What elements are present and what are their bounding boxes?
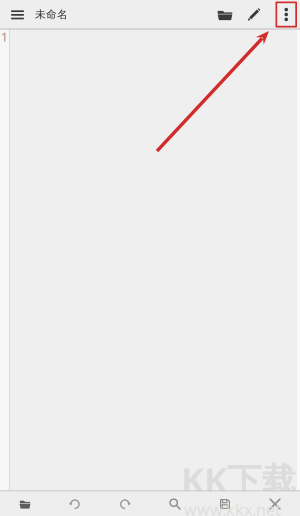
button[interactable]: Close: [250, 491, 300, 516]
button[interactable]: Menu: [7, 0, 28, 28]
button[interactable]: More options: [275, 1, 297, 27]
button[interactable]: Open file: [214, 0, 236, 28]
button[interactable]: Search: [150, 491, 200, 516]
button[interactable]: Redo: [100, 491, 150, 516]
button[interactable]: Save: [200, 491, 250, 516]
staticText: 未命名: [35, 8, 68, 21]
staticText: 1: [1, 29, 8, 45]
button[interactable]: Undo: [50, 491, 100, 516]
staticText: www.kkx.net: [184, 499, 281, 516]
button[interactable]: Files: [0, 491, 50, 516]
button[interactable]: Edit: [244, 0, 264, 28]
staticText: KK下载: [181, 456, 297, 502]
